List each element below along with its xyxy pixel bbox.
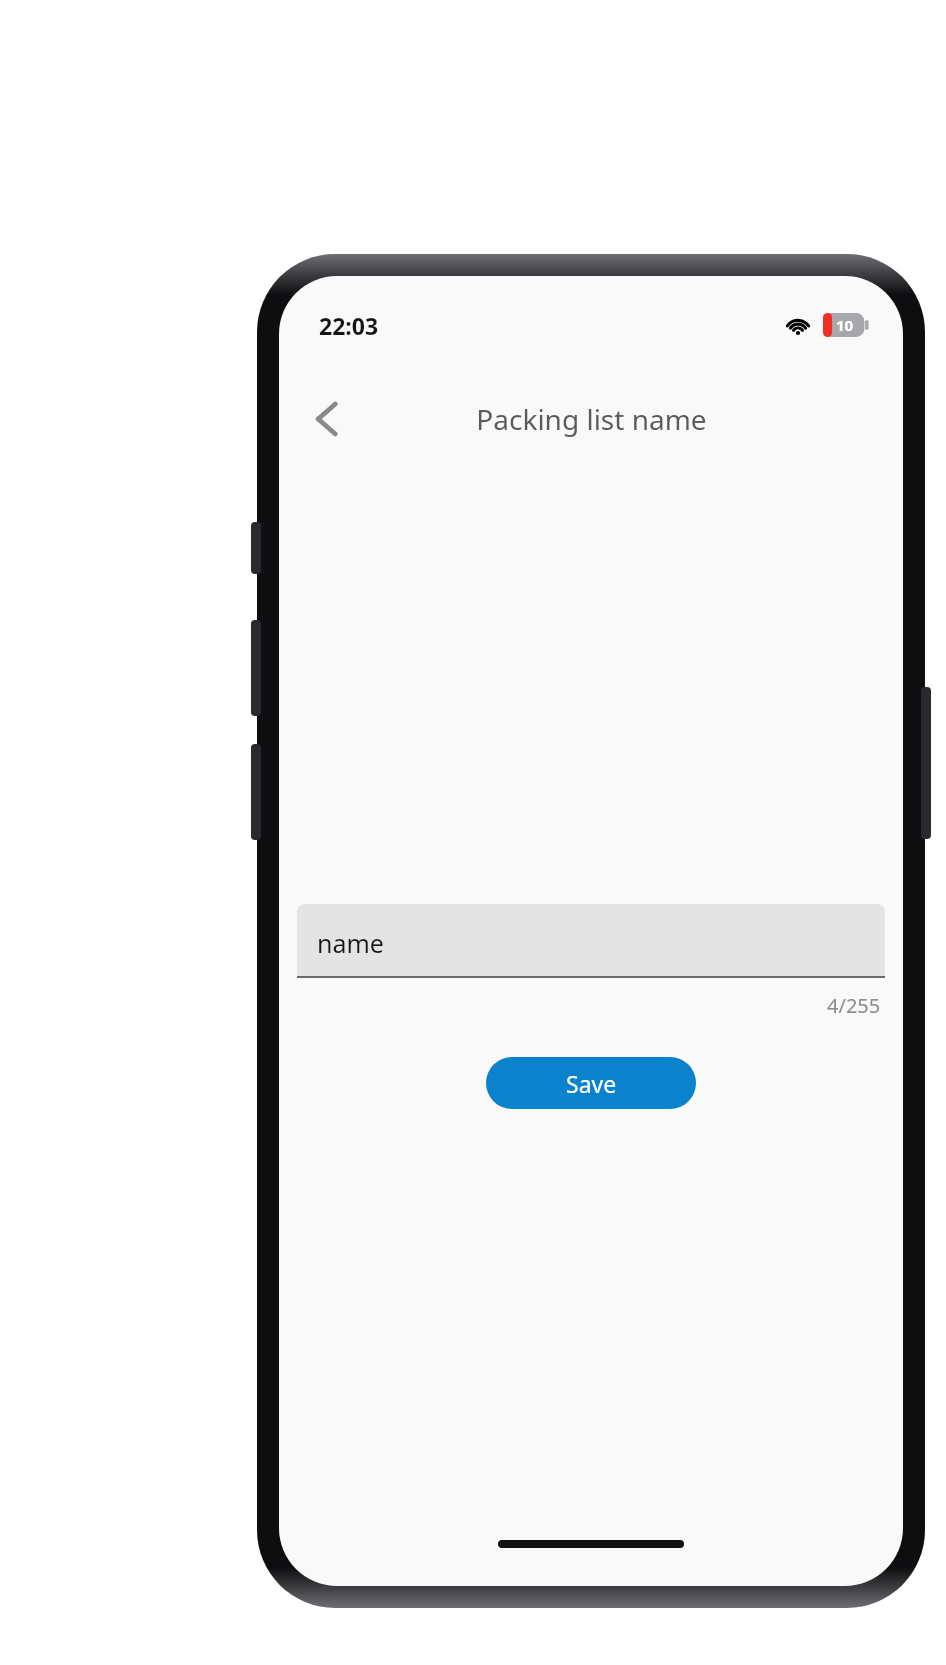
staticText: Packing list name xyxy=(476,400,707,438)
button[interactable]: Save xyxy=(486,1057,696,1109)
staticText: name xyxy=(317,926,384,960)
staticText: 10 xyxy=(836,315,854,335)
button[interactable]: name xyxy=(297,904,885,978)
button[interactable]: Back xyxy=(297,389,357,449)
staticText: 4/255 xyxy=(827,992,881,1019)
staticText: Save xyxy=(566,1068,617,1099)
staticText: 22:03 xyxy=(319,310,379,341)
